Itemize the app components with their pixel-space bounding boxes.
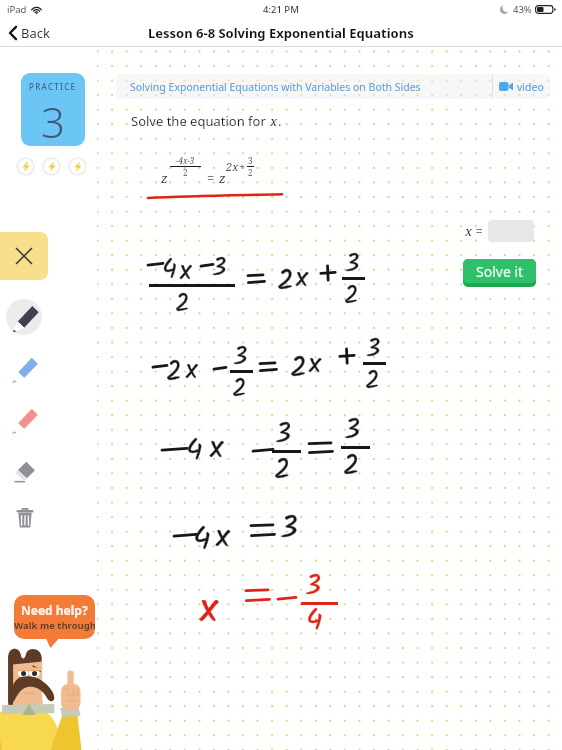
staticText: Lesson 6-8 Solving Exponential Equations: [148, 24, 414, 42]
staticText: 2: [274, 448, 291, 493]
staticText: 2: [166, 351, 182, 394]
button[interactable]: Energy: [68, 157, 87, 176]
button[interactable]: Energy: [42, 157, 61, 176]
button[interactable]: Need help?: [14, 595, 95, 648]
button[interactable]: Pencil: [6, 299, 42, 335]
staticText: 3: [345, 244, 360, 284]
staticText: 3: [233, 337, 248, 377]
staticText: 2: [175, 284, 190, 324]
staticText: 3: [344, 408, 360, 453]
staticText: −4x−3: [176, 155, 195, 166]
staticText: 2x: [226, 159, 239, 174]
staticText: .: [278, 112, 282, 130]
staticText: iPad: [7, 3, 27, 16]
staticText: x: [180, 250, 192, 293]
staticText: 3: [233, 337, 248, 377]
staticText: 3: [305, 564, 321, 609]
staticText: 3: [275, 412, 291, 457]
staticText: PRACTICE: [29, 81, 77, 92]
staticText: Solving Exponential Equations with Varia…: [130, 80, 421, 94]
staticText: 2: [343, 444, 360, 489]
staticText: x: [309, 342, 321, 387]
staticText: 3: [280, 505, 298, 554]
staticText: z: [161, 169, 168, 187]
staticText: 4: [306, 597, 323, 645]
staticText: 4: [186, 427, 203, 475]
button[interactable]: Delete: [13, 506, 37, 530]
staticText: x: [210, 424, 224, 473]
button[interactable]: Energy: [16, 157, 35, 176]
staticText: 2: [343, 444, 360, 489]
staticText: 2: [290, 346, 307, 392]
staticText: 2: [175, 284, 190, 324]
staticText: 3: [280, 505, 298, 554]
staticText: 2: [183, 167, 188, 178]
staticText: 2: [248, 167, 253, 178]
staticText: 2: [277, 259, 294, 305]
button[interactable]: Blue pencil: [8, 352, 40, 384]
button[interactable]: Red pencil: [8, 403, 40, 435]
button[interactable]: video: [493, 74, 550, 99]
staticText: 43%: [513, 3, 532, 16]
staticText: 4: [162, 249, 177, 292]
button[interactable]: Solve it: [463, 259, 536, 287]
staticText: 4:21 PM: [263, 3, 299, 16]
staticText: 3: [248, 155, 253, 166]
staticText: 3: [212, 248, 227, 288]
staticText: x: [180, 250, 192, 293]
staticText: 2: [277, 259, 294, 305]
staticText: 3: [41, 93, 65, 146]
button[interactable]: [488, 220, 534, 242]
staticText: x: [216, 512, 230, 563]
staticText: Need help?: [21, 602, 88, 618]
staticText: 2: [344, 276, 359, 316]
staticText: Solve it: [476, 262, 524, 281]
staticText: 2: [290, 346, 307, 392]
staticText: 2: [274, 448, 291, 493]
staticText: 3: [212, 248, 227, 288]
staticText: 3: [345, 244, 360, 284]
staticText: 4: [162, 249, 177, 292]
staticText: 2: [365, 361, 380, 401]
staticText: 3: [305, 564, 321, 609]
staticText: x: [309, 342, 321, 387]
staticText: Solve the equation for: [131, 112, 270, 130]
staticText: 3: [366, 329, 381, 369]
staticText: x: [270, 112, 278, 130]
staticText: x: [200, 577, 218, 644]
staticText: +: [239, 159, 246, 174]
staticText: 2: [232, 369, 247, 409]
staticText: =: [207, 169, 215, 187]
staticText: 3: [344, 408, 360, 453]
staticText: 2: [365, 361, 380, 401]
staticText: 2: [344, 276, 359, 316]
staticText: x =: [465, 222, 483, 240]
staticText: 2: [232, 369, 247, 409]
staticText: x: [186, 349, 198, 392]
staticText: 3: [366, 329, 381, 369]
staticText: x: [216, 512, 230, 563]
button[interactable]: Back: [6, 20, 53, 46]
staticText: 4: [193, 515, 211, 566]
staticText: x: [296, 256, 308, 301]
staticText: video: [517, 80, 544, 94]
staticText: x: [200, 577, 218, 644]
staticText: x: [296, 256, 308, 301]
staticText: 4: [193, 515, 211, 566]
staticText: x: [186, 349, 198, 392]
staticText: z: [219, 169, 226, 187]
button[interactable]: PRACTICE: [21, 73, 85, 146]
staticText: 3: [275, 412, 291, 457]
staticText: Walk me through: [14, 619, 95, 632]
staticText: 2: [166, 351, 182, 394]
button[interactable]: Eraser: [11, 456, 39, 484]
staticText: x: [210, 424, 224, 473]
button[interactable]: Close: [0, 232, 48, 280]
staticText: 4: [186, 427, 203, 475]
staticText: Back: [21, 24, 50, 42]
staticText: 4: [306, 597, 323, 645]
